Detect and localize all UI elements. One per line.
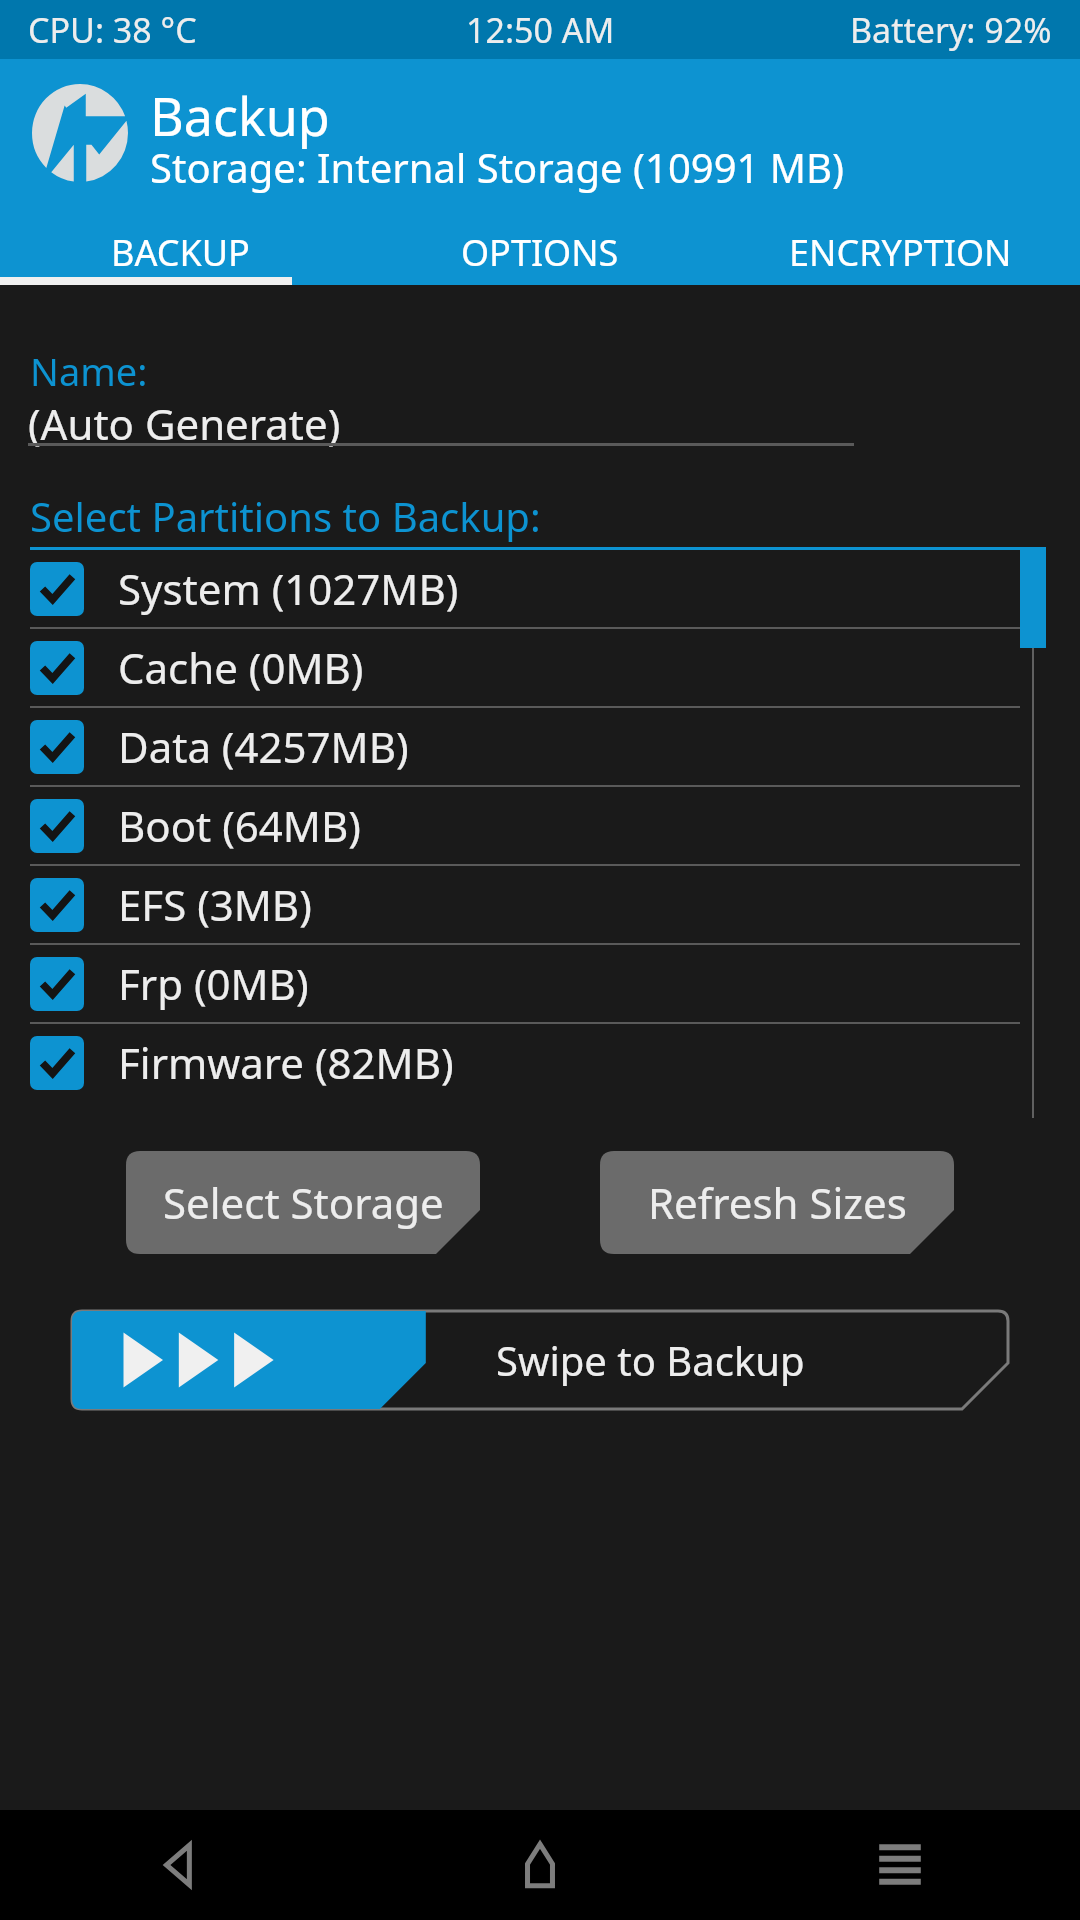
staticText: Refresh Sizes <box>648 1174 907 1231</box>
staticText: Boot (64MB) <box>118 797 361 854</box>
button[interactable]: Data (4257MB) <box>0 708 1080 785</box>
staticText: Cache (0MB) <box>118 639 364 696</box>
staticText: (Auto Generate) <box>28 395 341 452</box>
staticText: Select Partitions to Backup: <box>30 489 541 543</box>
staticText: Frp (0MB) <box>118 955 309 1012</box>
button[interactable]: Menu <box>720 1810 1080 1920</box>
button[interactable]: Back <box>0 1810 360 1920</box>
staticText: Storage: Internal Storage (10991 MB) <box>150 140 845 194</box>
staticText: Select Storage <box>163 1174 444 1231</box>
button[interactable]: Select Storage <box>126 1151 480 1254</box>
staticText: CPU: 38 °C <box>28 7 197 53</box>
button[interactable]: Cache (0MB) <box>0 629 1080 706</box>
button[interactable]: Firmware (82MB) <box>0 1024 1080 1101</box>
staticText: System (1027MB) <box>118 560 459 617</box>
button[interactable]: Boot (64MB) <box>0 787 1080 864</box>
staticText: Battery: 92% <box>850 7 1052 53</box>
staticText: BACKUP <box>111 228 250 277</box>
staticText: Swipe to Backup <box>496 1333 805 1387</box>
button[interactable]: OPTIONS <box>360 222 720 285</box>
button[interactable]: EFS (3MB) <box>0 866 1080 943</box>
staticText: ENCRYPTION <box>789 228 1012 277</box>
staticText: 12:50 AM <box>466 7 615 53</box>
button[interactable]: System (1027MB) <box>0 550 1080 627</box>
staticText: Backup <box>150 80 330 151</box>
button[interactable]: Refresh Sizes <box>600 1151 954 1254</box>
staticText: Data (4257MB) <box>118 718 409 775</box>
staticText: OPTIONS <box>461 228 619 277</box>
button[interactable]: Home <box>360 1810 720 1920</box>
button[interactable]: Frp (0MB) <box>0 945 1080 1022</box>
staticText: Name: <box>30 345 148 397</box>
button[interactable]: BACKUP <box>0 222 360 285</box>
button[interactable]: Swipe to Backup <box>72 1311 1008 1409</box>
button[interactable]: ENCRYPTION <box>720 222 1080 285</box>
staticText: EFS (3MB) <box>118 876 312 933</box>
staticText: Firmware (82MB) <box>118 1034 454 1091</box>
